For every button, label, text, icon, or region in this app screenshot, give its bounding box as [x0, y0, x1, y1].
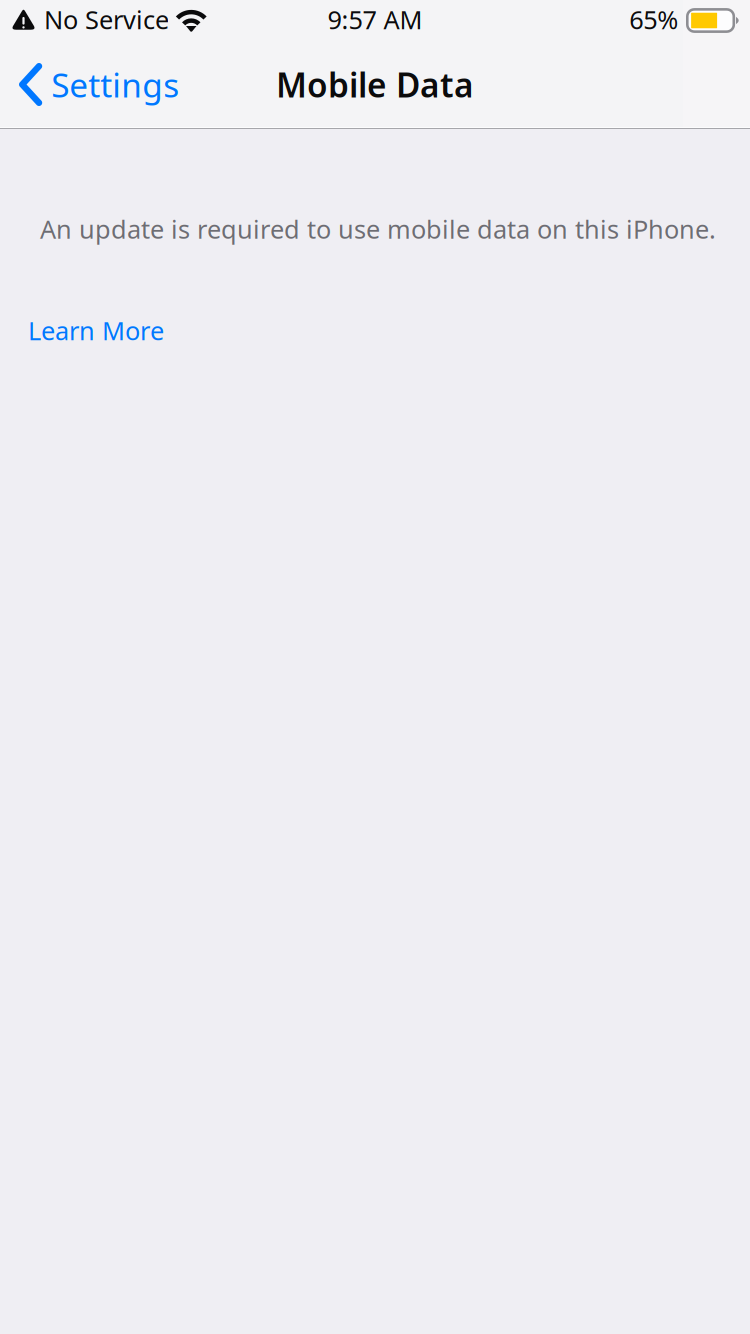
staticText: An update is required to use mobile data… — [40, 212, 716, 246]
staticText: Mobile Data — [276, 62, 474, 107]
staticText: No Service — [44, 3, 169, 36]
staticText: 65% — [629, 3, 678, 36]
staticText: 9:57 AM — [327, 3, 422, 36]
button[interactable]: Settings — [0, 41, 191, 128]
staticText: Settings — [51, 62, 179, 107]
button[interactable]: Learn More — [28, 310, 164, 351]
staticText: Learn More — [28, 314, 164, 347]
